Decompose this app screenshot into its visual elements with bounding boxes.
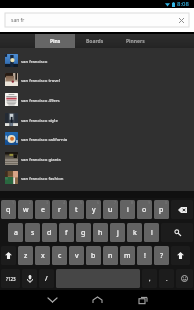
button[interactable]: w: [18, 200, 33, 219]
button[interactable]: b: [86, 246, 101, 265]
staticText: m: [124, 251, 131, 261]
button[interactable]: i: [120, 200, 135, 219]
staticText: Pinners: [126, 38, 145, 45]
button[interactable]: e: [35, 200, 50, 219]
staticText: e: [41, 205, 45, 215]
button[interactable]: san francisco giants: [0, 148, 194, 168]
button[interactable]: san francisco travel: [0, 69, 194, 89]
button[interactable]: m: [120, 246, 135, 265]
staticText: s: [31, 228, 35, 238]
button[interactable]: san francisco california: [0, 128, 194, 148]
staticText: x: [41, 251, 45, 261]
staticText: /: [45, 274, 48, 284]
button[interactable]: j: [110, 223, 125, 242]
staticText: t: [75, 205, 78, 215]
staticText: y: [92, 205, 96, 215]
staticText: d: [47, 228, 52, 238]
staticText: 6: [97, 200, 100, 205]
button[interactable]: Recent apps: [120, 290, 165, 310]
button[interactable]: Pinners: [115, 34, 155, 48]
button[interactable]: g: [76, 223, 91, 242]
button[interactable]: q: [1, 200, 16, 219]
button[interactable]: ,: [142, 269, 157, 288]
staticText: san francisco california: [21, 136, 68, 142]
button[interactable]: z: [18, 246, 33, 265]
button[interactable]: r: [52, 200, 67, 219]
staticText: v: [75, 251, 79, 261]
staticText: 1: [12, 200, 15, 205]
button[interactable]: t: [69, 200, 84, 219]
staticText: w: [23, 205, 29, 215]
staticText: g: [81, 228, 86, 238]
staticText: n: [108, 251, 113, 261]
button[interactable]: /: [39, 269, 54, 288]
button[interactable]: Voice input: [22, 269, 37, 288]
staticText: o: [142, 205, 147, 215]
staticText: z: [24, 251, 28, 261]
button[interactable]: n: [103, 246, 118, 265]
button[interactable]: Emoji: [176, 269, 193, 288]
button[interactable]: v: [69, 246, 84, 265]
staticText: .: [166, 275, 168, 283]
button[interactable]: Close keyboard: [30, 290, 75, 310]
staticText: !: [144, 251, 146, 261]
button[interactable]: u: [103, 200, 118, 219]
button[interactable]: san francisco 49ers: [0, 89, 194, 109]
button[interactable]: Clear search: [175, 14, 187, 26]
button[interactable]: Backspace: [171, 200, 193, 219]
button[interactable]: !: [137, 246, 152, 265]
button[interactable]: o: [137, 200, 152, 219]
staticText: ,: [149, 275, 151, 283]
staticText: f: [65, 228, 68, 238]
staticText: san francisco fashion: [21, 175, 64, 181]
staticText: Pins: [50, 38, 61, 45]
button[interactable]: f: [59, 223, 74, 242]
staticText: j: [117, 228, 119, 238]
button[interactable]: san francisco: [0, 50, 194, 70]
staticText: l: [151, 228, 153, 238]
staticText: san francisco giants: [21, 156, 61, 162]
button[interactable]: y: [86, 200, 101, 219]
staticText: 8: [131, 200, 134, 205]
staticText: i: [127, 205, 129, 215]
button[interactable]: Home: [75, 290, 120, 310]
button[interactable]: Search: [161, 223, 193, 242]
staticText: h: [98, 228, 103, 238]
staticText: 3: [46, 200, 49, 205]
button[interactable]: p: [154, 200, 169, 219]
staticText: p: [159, 205, 164, 215]
staticText: q: [6, 205, 11, 215]
staticText: san francisco travel: [21, 77, 60, 83]
staticText: c: [58, 251, 62, 261]
button[interactable]: Boards: [75, 34, 115, 48]
button[interactable]: san francisco fashion: [0, 167, 194, 187]
staticText: san francisco: [21, 58, 48, 64]
button[interactable]: s: [25, 223, 40, 242]
staticText: b: [91, 251, 96, 261]
button[interactable]: Shift: [1, 246, 16, 265]
button[interactable]: x: [35, 246, 50, 265]
button[interactable]: ?: [154, 246, 169, 265]
staticText: 5: [80, 200, 83, 205]
staticText: a: [14, 228, 18, 238]
staticText: san francisco style: [21, 117, 58, 123]
staticText: 7: [114, 200, 117, 205]
staticText: 8:08: [177, 0, 189, 8]
button[interactable]: ?123: [1, 269, 20, 288]
button[interactable]: d: [42, 223, 57, 242]
button[interactable]: Pins: [35, 34, 75, 48]
button[interactable]: h: [93, 223, 108, 242]
button[interactable]: Shift: [171, 246, 190, 265]
staticText: u: [108, 205, 113, 215]
button[interactable]: c: [52, 246, 67, 265]
button[interactable]: .: [159, 269, 174, 288]
button[interactable]: l: [144, 223, 159, 242]
staticText: 4: [63, 200, 66, 205]
button[interactable]: k: [127, 223, 142, 242]
button[interactable]: san francisco style: [0, 109, 194, 129]
staticText: san francisco 49ers: [21, 97, 60, 103]
button[interactable]: a: [8, 223, 23, 242]
button[interactable]: san fr: [5, 13, 189, 27]
